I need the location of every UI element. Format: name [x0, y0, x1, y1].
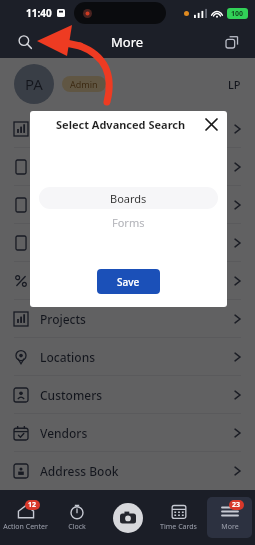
staticText: Projects [40, 311, 86, 327]
button[interactable]: Tasks [0, 224, 255, 261]
button[interactable]: Tabs [221, 31, 243, 53]
staticText: LP [228, 77, 241, 92]
button[interactable]: Customers [0, 376, 255, 413]
staticText: Vendors [40, 425, 88, 441]
button[interactable]: Address Book [0, 452, 255, 489]
button[interactable]: Reports [0, 262, 255, 299]
button[interactable]: Projects [0, 300, 255, 337]
staticText: Customers [40, 387, 103, 403]
button[interactable]: 23 [207, 497, 252, 538]
staticText: Save [117, 275, 140, 289]
staticText: 12 [28, 500, 37, 510]
staticText: Select Advanced Search [56, 117, 186, 132]
button[interactable]: Time Cards [156, 497, 201, 538]
staticText: Schedule [40, 197, 92, 213]
staticText: Admin [70, 78, 98, 90]
staticText: Forms [112, 215, 145, 230]
button[interactable]: Save [97, 269, 160, 294]
button[interactable]: Boards [39, 187, 218, 209]
button[interactable]: 12 [3, 497, 48, 538]
button[interactable]: Clock [54, 497, 99, 538]
staticText: Boards [110, 191, 147, 206]
staticText: 23 [232, 500, 241, 510]
staticText: PA [25, 74, 43, 94]
button[interactable]: Locations [0, 338, 255, 375]
staticText: 100 [231, 9, 244, 19]
staticText: More [221, 522, 239, 532]
button[interactable]: Camera [113, 503, 143, 533]
staticText: Time Cards [160, 522, 197, 532]
button[interactable]: Schedule [0, 186, 255, 223]
staticText: More [111, 33, 144, 51]
staticText: Locations [40, 349, 96, 365]
button[interactable]: Search [14, 31, 36, 53]
button[interactable]: Forms [30, 209, 227, 235]
staticText: 11:40 [26, 6, 52, 20]
button[interactable]: Vendors [0, 414, 255, 451]
staticText: Action Center [3, 522, 48, 532]
button[interactable]: Close [202, 115, 220, 133]
staticText: Clock [68, 522, 86, 532]
staticText: Address Book [40, 463, 119, 479]
staticText: Dashboard [40, 121, 103, 137]
button[interactable]: Dashboard [0, 110, 255, 147]
button[interactable]: Documents [0, 148, 255, 185]
